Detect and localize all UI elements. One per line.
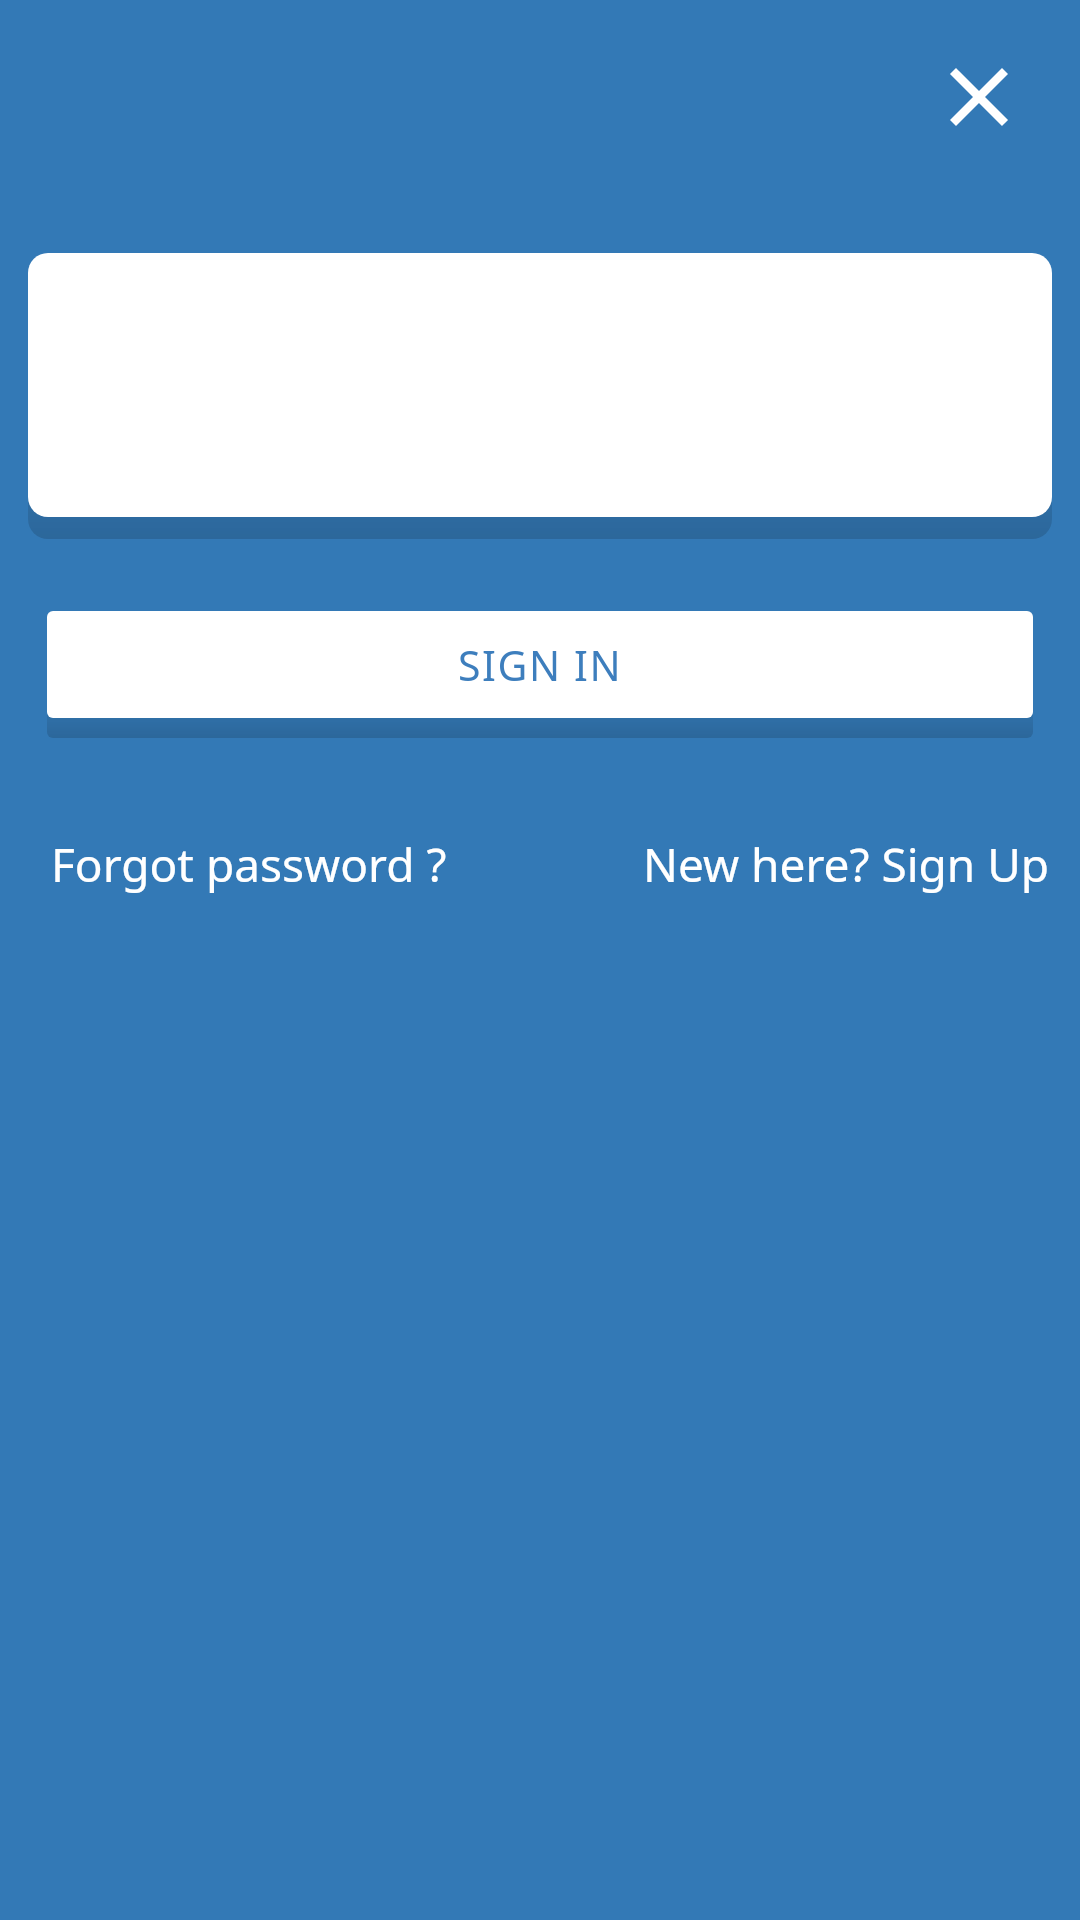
staticText: New here? Sign Up xyxy=(643,833,1050,896)
staticText: SIGN IN xyxy=(458,637,623,693)
button[interactable]: New here? Sign Up xyxy=(629,821,1064,908)
button[interactable]: Close xyxy=(919,37,1039,157)
button[interactable]: Forgot password ? xyxy=(37,821,461,908)
staticText: Forgot password ? xyxy=(51,833,447,896)
button[interactable]: SIGN IN xyxy=(47,611,1033,718)
